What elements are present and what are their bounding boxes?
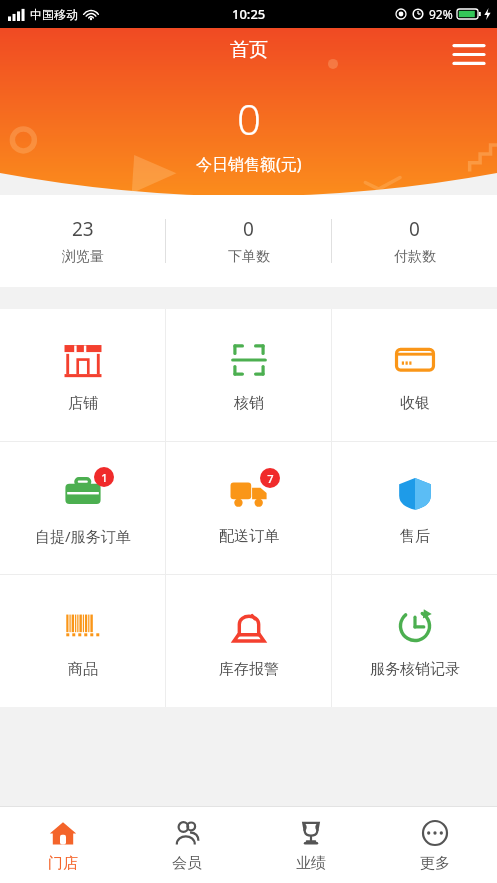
staticText: 0 (243, 216, 254, 242)
button[interactable]: 1 (0, 442, 165, 574)
button[interactable]: 0 (166, 195, 331, 287)
button[interactable]: 更多 (373, 807, 497, 883)
staticText: 23 (72, 216, 94, 242)
staticText: 服务核销记录 (370, 660, 460, 679)
staticText: 更多 (420, 854, 450, 873)
staticText: 付款数 (394, 248, 436, 266)
staticText: 0 (409, 216, 420, 242)
staticText: 售后 (400, 527, 430, 546)
staticText: 店铺 (68, 394, 98, 413)
button[interactable]: 收银 (332, 309, 497, 441)
staticText: 门店 (48, 854, 78, 873)
button[interactable]: 商品 (0, 575, 165, 707)
button[interactable]: 库存报警 (166, 575, 331, 707)
button[interactable]: 门店 (0, 807, 125, 883)
button[interactable]: 店铺 (0, 309, 165, 441)
button[interactable]: 7 (166, 442, 331, 574)
staticText: 1 (101, 470, 108, 485)
staticText: 中国移动 (30, 7, 78, 22)
button[interactable]: 核销 (166, 309, 331, 441)
staticText: 会员 (172, 854, 202, 873)
button[interactable]: 售后 (332, 442, 497, 574)
staticText: 今日销售额(元) (196, 153, 302, 175)
button[interactable]: Menu (447, 32, 491, 76)
staticText: 0 (237, 90, 261, 147)
button[interactable]: 0 (332, 195, 497, 287)
staticText: 7 (267, 471, 274, 486)
staticText: 库存报警 (219, 660, 279, 679)
button[interactable]: 业绩 (249, 807, 373, 883)
button[interactable]: 23 (0, 195, 165, 287)
staticText: 下单数 (228, 248, 270, 266)
staticText: 配送订单 (219, 527, 279, 546)
staticText: 商品 (68, 660, 98, 679)
staticText: 首页 (230, 38, 268, 62)
button[interactable]: 服务核销记录 (332, 575, 497, 707)
button[interactable]: 会员 (125, 807, 249, 883)
staticText: 收银 (400, 394, 430, 413)
staticText: 自提/服务订单 (35, 526, 131, 546)
staticText: 10:25 (232, 5, 266, 23)
staticText: 浏览量 (62, 248, 104, 266)
staticText: 92% (429, 6, 453, 22)
staticText: 业绩 (296, 854, 326, 873)
staticText: 核销 (234, 394, 264, 413)
